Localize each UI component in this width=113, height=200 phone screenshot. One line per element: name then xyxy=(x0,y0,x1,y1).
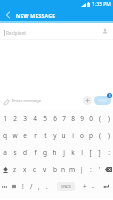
button[interactable]: a xyxy=(0,144,10,161)
staticText: 5 xyxy=(43,114,47,123)
staticText: h xyxy=(52,148,57,157)
button[interactable]: g xyxy=(40,144,50,161)
button[interactable]: : xyxy=(86,161,95,178)
staticText: l xyxy=(81,148,83,157)
button[interactable]: v xyxy=(40,161,50,178)
staticText: 6 xyxy=(53,114,57,123)
button[interactable]: Attach xyxy=(1,97,12,108)
button[interactable]: y xyxy=(50,127,59,144)
staticText: j xyxy=(63,148,65,157)
button[interactable]: Enter xyxy=(98,178,113,195)
staticText: 9 xyxy=(80,114,84,123)
staticText: 1 xyxy=(3,114,7,123)
button[interactable]: ) xyxy=(104,110,113,127)
button[interactable]: ( xyxy=(95,110,104,127)
staticText: 0 xyxy=(89,114,93,123)
button[interactable]: o xyxy=(77,127,86,144)
button[interactable]: w xyxy=(10,127,20,144)
button[interactable]: q xyxy=(0,127,10,144)
staticText: SEND xyxy=(98,98,108,103)
button[interactable]: f xyxy=(30,144,40,161)
button[interactable]: Shift xyxy=(0,161,10,178)
button[interactable]: j xyxy=(59,144,68,161)
staticText: p xyxy=(89,131,93,140)
staticText: a xyxy=(3,148,7,157)
button[interactable]: [ xyxy=(86,144,95,161)
staticText: v xyxy=(43,165,47,174)
button[interactable]: i xyxy=(68,127,77,144)
button[interactable]: r xyxy=(30,127,40,144)
staticText: f xyxy=(34,148,37,157)
button[interactable]: 6 xyxy=(50,110,59,127)
button[interactable]: , xyxy=(35,178,43,195)
staticText: ) xyxy=(108,114,110,123)
staticText: k xyxy=(71,148,75,157)
button[interactable]: b xyxy=(50,161,59,178)
button[interactable]: Backspace xyxy=(104,161,113,178)
staticText: : xyxy=(90,165,92,174)
staticText: t xyxy=(44,131,47,140)
staticText: Enter message xyxy=(12,98,42,104)
staticText: 8 xyxy=(71,114,75,123)
button[interactable]: 0 xyxy=(86,110,95,127)
button[interactable]: ( xyxy=(95,127,104,144)
button[interactable]: n xyxy=(59,161,68,178)
button[interactable]: Back xyxy=(0,9,15,21)
button[interactable]: l xyxy=(77,144,86,161)
staticText: 4 xyxy=(33,114,37,123)
staticText: ( xyxy=(99,131,101,140)
button[interactable]: c xyxy=(30,161,40,178)
button[interactable]: 2 xyxy=(10,110,20,127)
button[interactable]: 5 xyxy=(40,110,50,127)
staticText: , xyxy=(38,182,40,191)
button[interactable]: u xyxy=(59,127,68,144)
button[interactable]: . xyxy=(43,178,51,195)
staticText: . xyxy=(46,182,48,191)
button[interactable]: More symbols xyxy=(0,178,9,195)
button[interactable]: 4 xyxy=(30,110,40,127)
staticText: q xyxy=(3,131,7,140)
staticText: z xyxy=(13,165,17,174)
button[interactable]: / xyxy=(27,178,35,195)
button[interactable]: ' xyxy=(95,161,104,178)
button[interactable]: d xyxy=(20,144,30,161)
button[interactable]: h xyxy=(50,144,59,161)
button[interactable]: s xyxy=(10,144,20,161)
staticText: g xyxy=(43,148,47,157)
button[interactable]: 3 xyxy=(20,110,30,127)
staticText: x xyxy=(23,165,27,174)
button[interactable]: ! xyxy=(18,178,27,195)
staticText: o xyxy=(80,131,84,140)
button[interactable]: Add attachment xyxy=(81,94,93,106)
button[interactable]: p xyxy=(86,127,95,144)
button[interactable]: ] xyxy=(95,144,104,161)
button[interactable]: 8 xyxy=(68,110,77,127)
button[interactable]: - xyxy=(89,178,98,195)
button[interactable]: e xyxy=(20,127,30,144)
staticText: ! xyxy=(22,182,24,191)
button[interactable]: Keyboard settings xyxy=(9,178,18,195)
button[interactable]: 7 xyxy=(59,110,68,127)
staticText: + xyxy=(83,182,87,191)
button[interactable]: Space xyxy=(57,182,75,191)
button[interactable]: 9 xyxy=(77,110,86,127)
button[interactable]: z xyxy=(10,161,20,178)
staticText: c xyxy=(33,165,37,174)
staticText: s xyxy=(13,148,17,157)
button[interactable]: Contacts xyxy=(97,23,113,39)
staticText: ' xyxy=(99,165,101,174)
staticText: : xyxy=(108,148,110,157)
staticText: SPACE xyxy=(61,184,72,189)
button[interactable]: m xyxy=(68,161,77,178)
button[interactable]: | xyxy=(77,161,86,178)
staticText: d xyxy=(23,148,27,157)
button[interactable]: + xyxy=(80,178,89,195)
button[interactable]: : xyxy=(104,144,113,161)
button[interactable]: t xyxy=(40,127,50,144)
button[interactable]: 1 xyxy=(0,110,10,127)
button[interactable]: ) xyxy=(104,127,113,144)
staticText: 1 xyxy=(109,94,111,98)
button[interactable]: x xyxy=(20,161,30,178)
button[interactable]: Send xyxy=(94,96,111,105)
button[interactable]: k xyxy=(68,144,77,161)
